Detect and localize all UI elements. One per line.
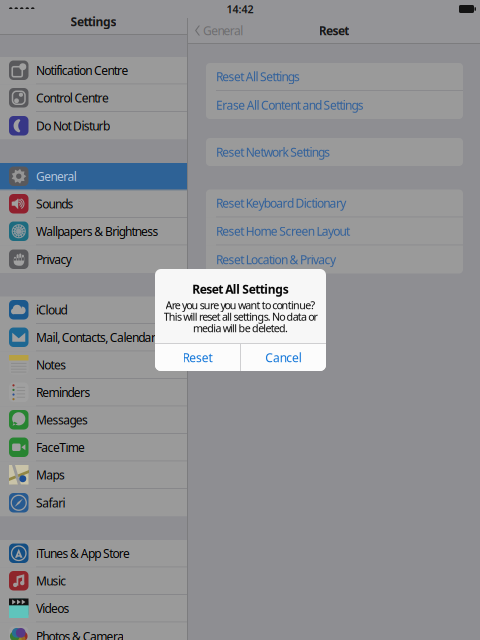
button[interactable]: General (0, 163, 187, 190)
staticText: Sounds (36, 196, 73, 212)
staticText: iTunes & App Store (36, 545, 130, 561)
button[interactable]: Videos (0, 595, 187, 622)
button[interactable]: General (188, 18, 243, 42)
button[interactable]: Do Not Disturb (0, 112, 187, 139)
button[interactable]: Cancel (241, 344, 326, 371)
staticText: Control Centre (36, 90, 109, 106)
button[interactable]: Reset All Settings (206, 63, 463, 91)
button[interactable]: iTunes & App Store (0, 540, 187, 567)
staticText: General (203, 22, 243, 38)
staticText: Reset All Settings (192, 281, 289, 297)
button[interactable]: Photos & Camera (0, 622, 187, 640)
staticText: Reset (183, 349, 212, 365)
staticText: Reset Home Screen Layout (216, 223, 350, 239)
button[interactable]: Reset Network Settings (206, 138, 463, 166)
staticText: Safari (36, 495, 65, 511)
button[interactable]: Music (0, 567, 187, 595)
button[interactable]: Erase All Content and Settings (206, 91, 463, 119)
staticText: This will reset all settings. No data or (164, 309, 317, 324)
staticText: Mail, Contacts, Calendar (36, 329, 156, 345)
staticText: Videos (36, 600, 69, 616)
staticText: Reset (319, 22, 349, 38)
staticText: 14:42 (226, 2, 253, 16)
button[interactable]: Privacy (0, 245, 187, 273)
button[interactable]: Messages (0, 406, 187, 434)
staticText: Notification Centre (36, 62, 128, 78)
button[interactable]: Reset Keyboard Dictionary (206, 189, 463, 217)
button[interactable]: Reset Location & Privacy (206, 245, 463, 273)
staticText: Do Not Disturb (36, 118, 110, 134)
button[interactable]: Safari (0, 489, 187, 516)
staticText: Reset All Settings (216, 68, 300, 84)
staticText: Reset Location & Privacy (216, 251, 336, 267)
staticText: Notes (36, 357, 66, 373)
button[interactable]: Settings (61, 9, 126, 33)
staticText: Settings (71, 13, 116, 29)
staticText: Music (36, 573, 66, 589)
staticText: Cancel (265, 349, 302, 365)
button[interactable]: Wallpapers & Brightness (0, 218, 187, 245)
staticText: Privacy (36, 251, 72, 267)
staticText: iCloud (36, 302, 67, 318)
button[interactable]: Control Centre (0, 84, 187, 112)
staticText: FaceTime (36, 439, 85, 455)
staticText: Maps (36, 467, 65, 483)
button[interactable]: Reset Home Screen Layout (206, 217, 463, 245)
staticText: Photos & Camera (36, 628, 124, 640)
button[interactable]: Sounds (0, 190, 187, 218)
button[interactable]: Reset (155, 344, 240, 371)
staticText: Messages (36, 412, 88, 428)
button[interactable]: Maps (0, 461, 187, 489)
staticText: Erase All Content and Settings (216, 97, 364, 113)
staticText: General (36, 168, 77, 184)
staticText: Reset Network Settings (216, 144, 330, 160)
staticText: Wallpapers & Brightness (36, 223, 159, 239)
button[interactable]: FaceTime (0, 434, 187, 461)
button[interactable]: Notes (0, 351, 187, 379)
button[interactable]: Reminders (0, 379, 187, 406)
button[interactable]: Notification Centre (0, 57, 187, 84)
staticText: Reset Keyboard Dictionary (216, 195, 346, 211)
staticText: Reminders (36, 384, 90, 400)
staticText: media will be deleted. (193, 321, 288, 335)
staticText: Are you sure you want to continue? (165, 298, 315, 312)
button[interactable]: iCloud (0, 296, 187, 324)
button[interactable]: Mail, Contacts, Calendar (0, 324, 187, 351)
